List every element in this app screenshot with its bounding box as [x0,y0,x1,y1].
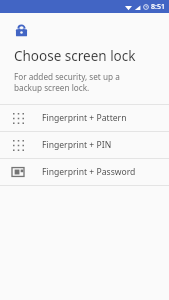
staticText: Choose screen lock [14,47,136,65]
button[interactable]: Fingerprint + Pattern [0,105,169,131]
button[interactable]: Fingerprint + Password [0,159,169,185]
staticText: Fingerprint + Password [42,166,136,178]
staticText: Fingerprint + Pattern [42,112,127,124]
button[interactable]: Fingerprint + PIN [0,132,169,158]
staticText: For added security, set up a backup scre… [14,71,147,93]
staticText: Fingerprint + PIN [42,139,112,151]
staticText: 8:51 [151,2,165,12]
